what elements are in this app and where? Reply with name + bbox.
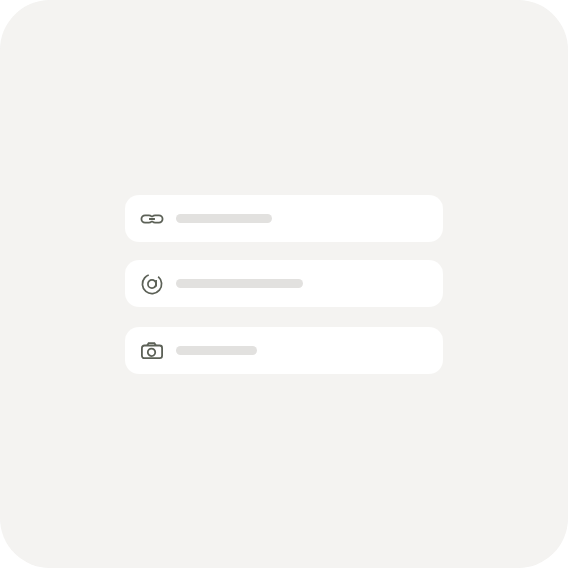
other: Link	[140, 207, 164, 231]
button[interactable]: Camera	[125, 327, 443, 374]
button[interactable]: Link	[125, 195, 443, 242]
other: Camera	[140, 339, 164, 363]
button[interactable]: Mention	[125, 260, 443, 307]
other: Mention	[140, 272, 164, 296]
